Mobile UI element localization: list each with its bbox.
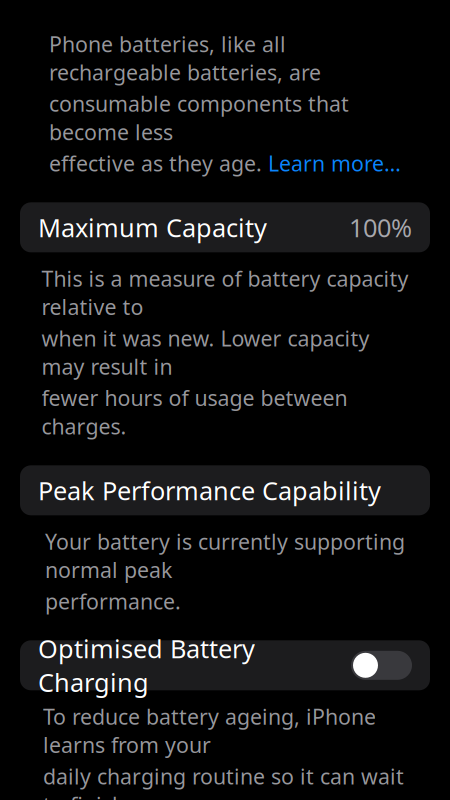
staticText: Maximum Capacity [38,210,267,244]
staticText: when it was new. Lower capacity may resu… [41,324,369,381]
staticText: performance. [45,587,181,615]
staticText: This is a measure of battery capacity re… [41,264,408,321]
staticText: fewer hours of usage between charges. [41,384,347,440]
button[interactable]: Maximum Capacity [20,202,430,252]
staticText: consumable components that become less [49,89,349,146]
staticText: Optimised Battery Charging [38,632,255,699]
staticText: Phone batteries, like all rechargeable b… [49,30,321,86]
button[interactable]: Learn more… [268,149,401,177]
staticText: Your battery is currently supporting nor… [45,527,405,584]
staticText: effective as they age. [49,149,268,177]
button[interactable]: Optimised Battery Charging [20,640,430,690]
button[interactable]: Peak Performance Capability [20,465,430,515]
staticText: 100% [349,210,412,244]
staticText: daily charging routine so it can wait to… [43,762,404,800]
staticText: Learn more… [268,149,401,177]
staticText: To reduce battery ageing, iPhone learns … [43,702,376,759]
staticText: Peak Performance Capability [38,473,381,507]
